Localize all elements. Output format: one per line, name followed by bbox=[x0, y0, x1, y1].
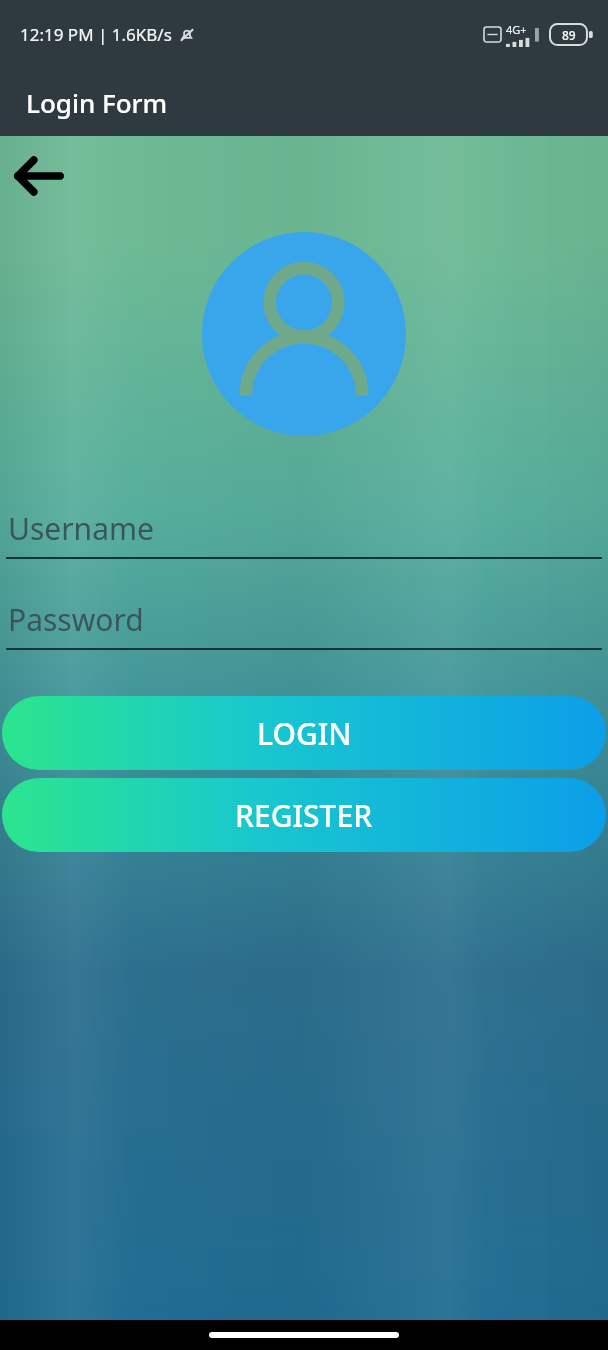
staticText: LOGIN bbox=[257, 713, 352, 754]
staticText: Password bbox=[8, 599, 144, 640]
staticText: Login Form bbox=[26, 85, 168, 120]
staticText: Username bbox=[8, 508, 154, 549]
button[interactable]: Password bbox=[0, 599, 608, 650]
button[interactable]: Back bbox=[8, 150, 70, 202]
staticText: 12:19 PM | 1.6KB/s bbox=[20, 23, 172, 46]
staticText: 4G+ bbox=[506, 22, 527, 37]
staticText: 89 bbox=[562, 27, 576, 43]
button[interactable]: REGISTER bbox=[2, 778, 606, 852]
button[interactable]: Username bbox=[0, 508, 608, 559]
button[interactable]: LOGIN bbox=[2, 696, 606, 770]
staticText: REGISTER bbox=[235, 795, 373, 836]
